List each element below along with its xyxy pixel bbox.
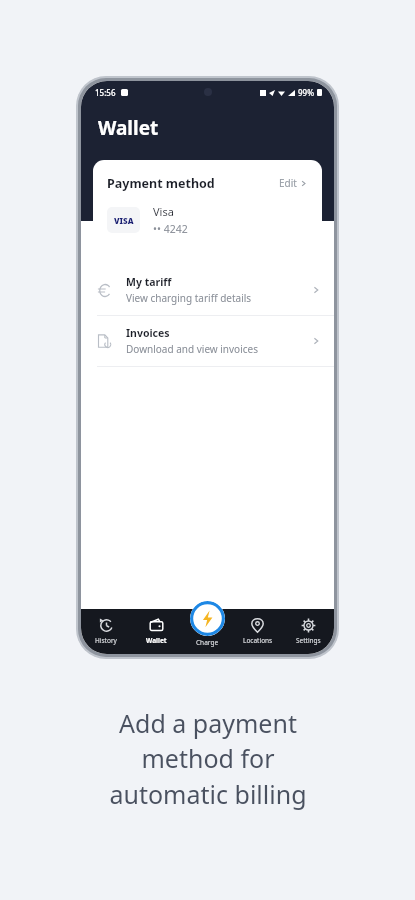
button[interactable]: Invoices	[81, 316, 334, 366]
button[interactable]: Wallet	[131, 609, 181, 654]
staticText: Settings	[296, 636, 321, 645]
button[interactable]: Edit	[276, 173, 310, 193]
staticText: VISA	[114, 215, 134, 226]
staticText: Download and view invoices	[126, 342, 258, 356]
button[interactable]: Charge	[190, 601, 225, 636]
button[interactable]: Locations	[232, 609, 283, 654]
staticText: Payment method	[107, 175, 215, 192]
staticText: Locations	[243, 636, 273, 645]
staticText: My tariff	[126, 275, 172, 289]
staticText: Invoices	[126, 326, 170, 340]
button[interactable]: Payment method	[93, 160, 322, 251]
staticText: 99%	[298, 87, 314, 98]
staticText: Wallet	[98, 115, 159, 141]
staticText: Wallet	[146, 636, 167, 645]
button[interactable]: Settings	[283, 609, 334, 654]
staticText: •• 4242	[153, 222, 188, 236]
staticText: Add a payment method for automatic billi…	[109, 706, 307, 812]
staticText: 15:56	[95, 87, 116, 98]
staticText: Charge	[196, 638, 219, 647]
staticText: History	[95, 636, 117, 645]
button[interactable]: My tariff	[81, 265, 334, 315]
staticText: Edit	[279, 176, 297, 190]
staticText: Visa	[153, 204, 174, 219]
staticText: View charging tariff details	[126, 291, 252, 305]
button[interactable]: History	[81, 609, 131, 654]
